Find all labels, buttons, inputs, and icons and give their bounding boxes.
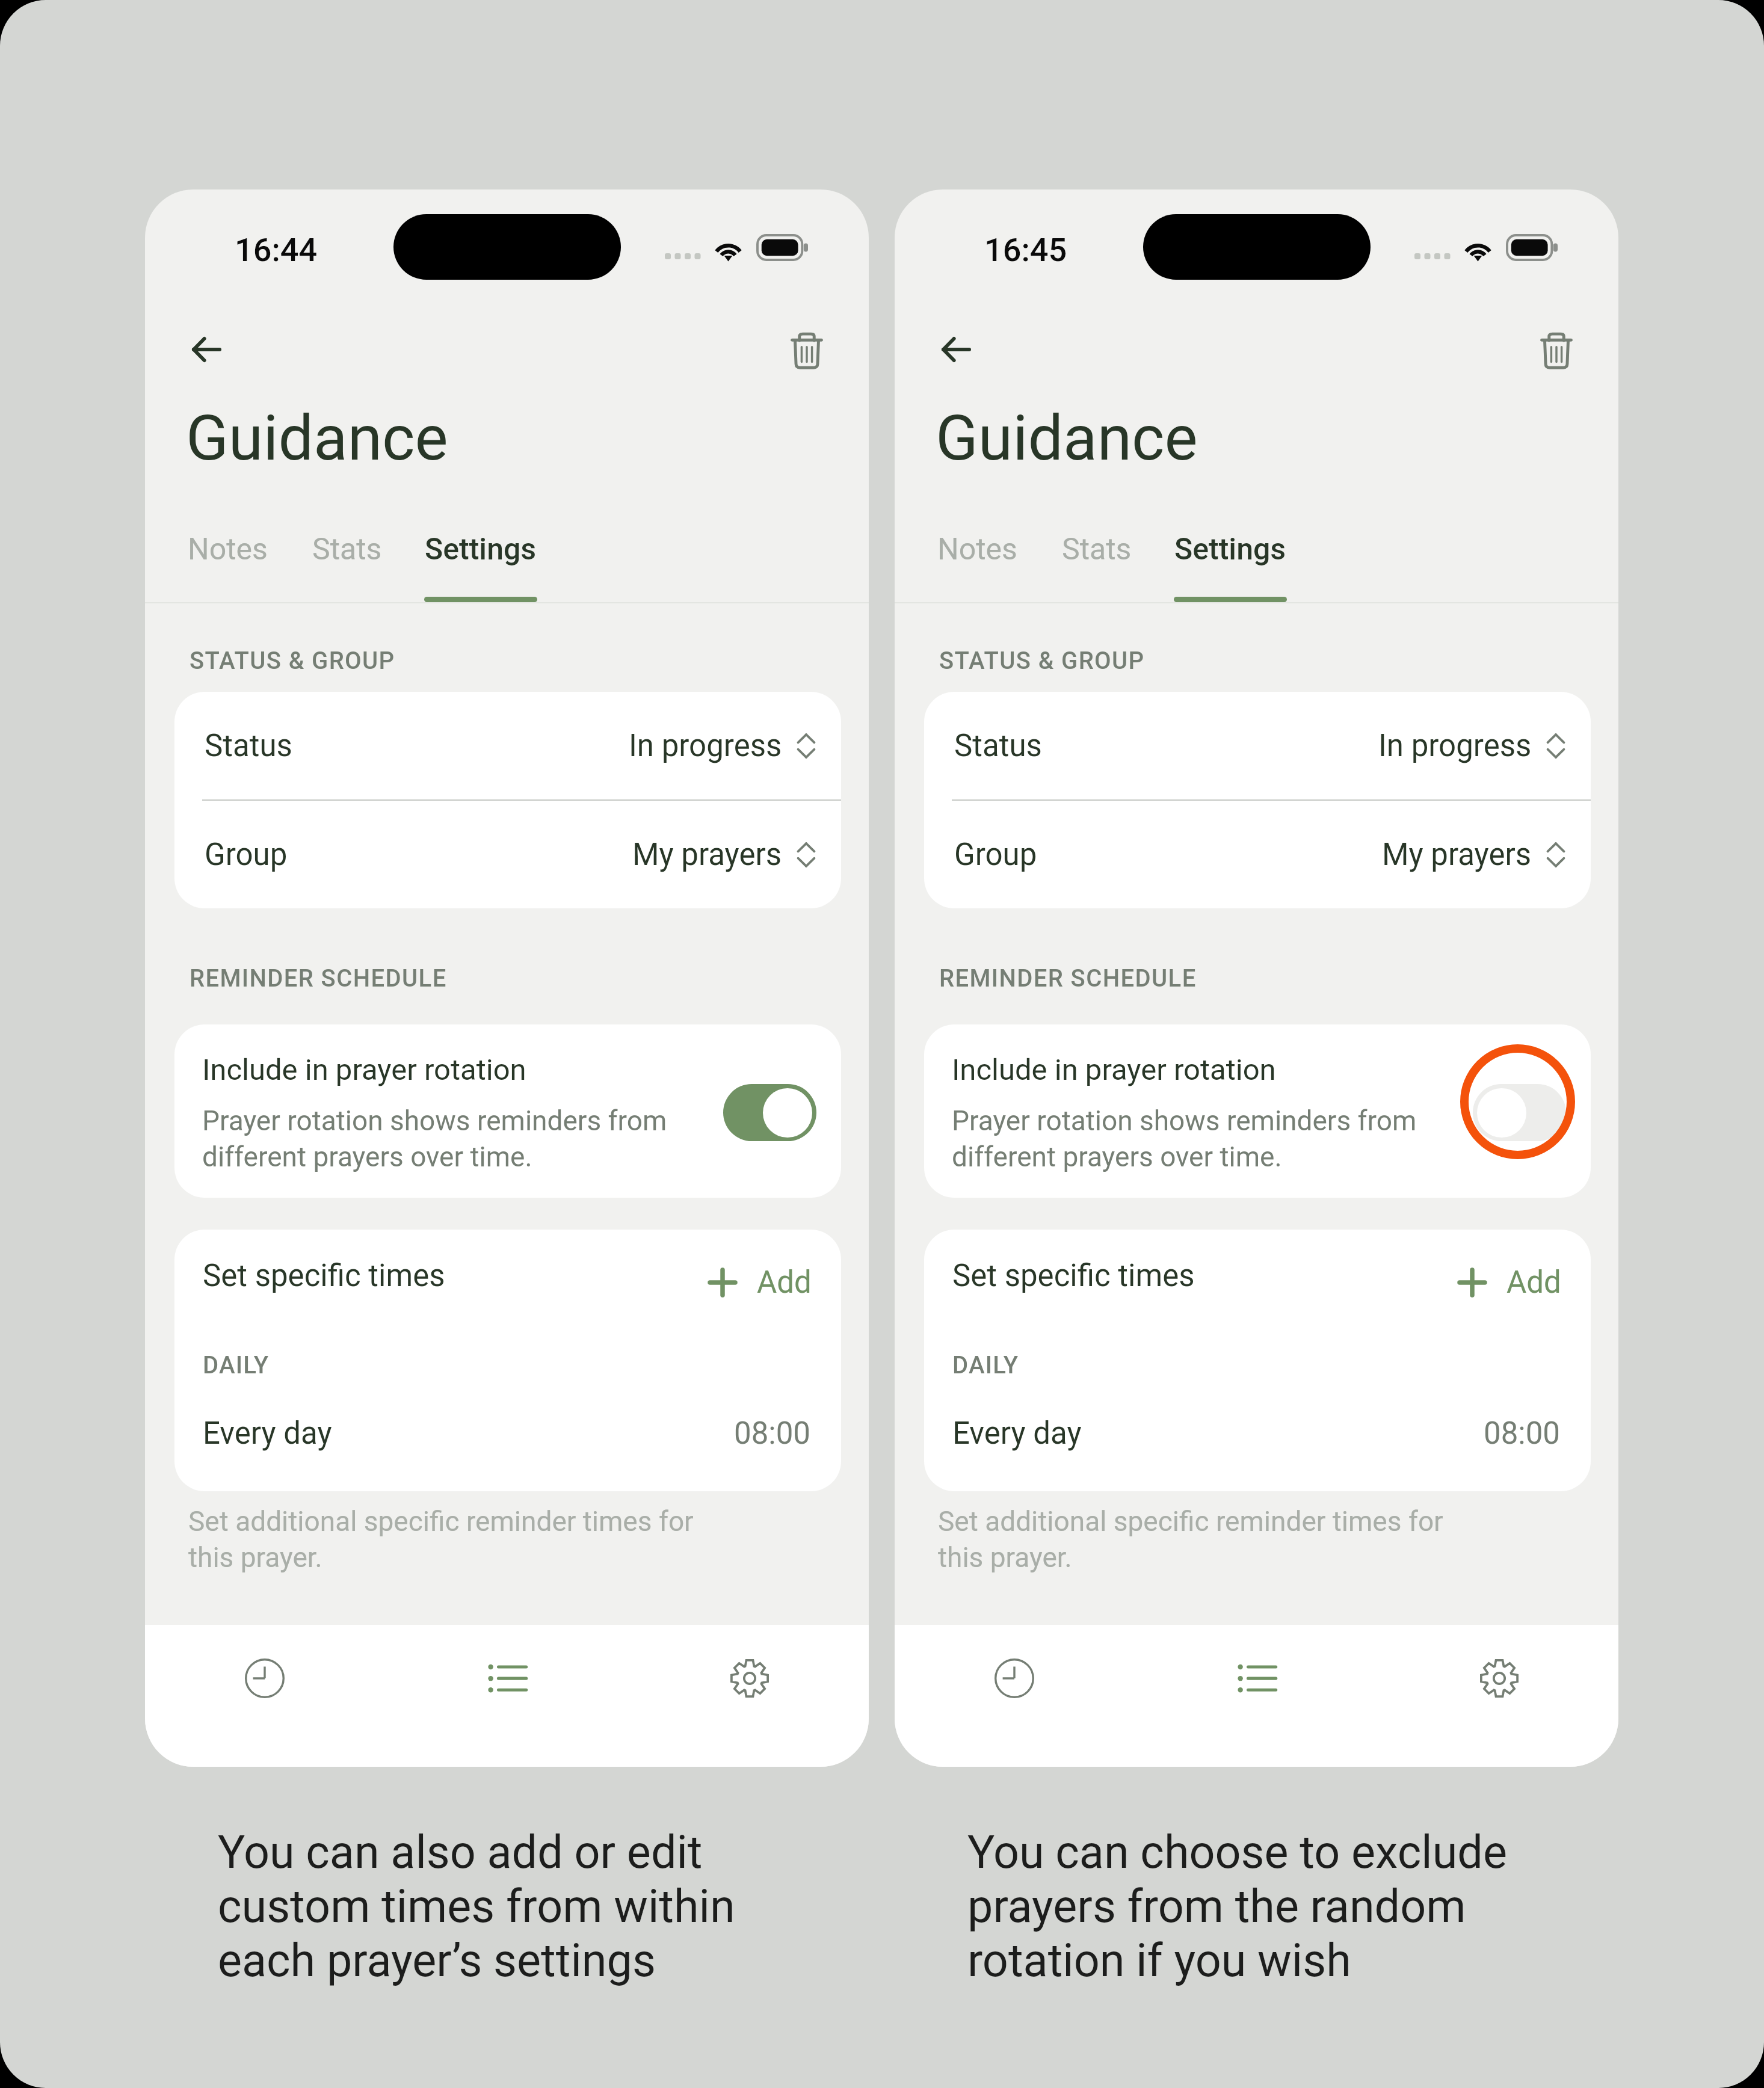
- staticText: Prayer rotation shows reminders from dif…: [202, 1101, 667, 1174]
- staticText: 08:00: [1484, 1415, 1561, 1452]
- button[interactable]: Prayer list: [460, 1630, 556, 1726]
- staticText: You can choose to exclude prayers from t…: [967, 1825, 1507, 1988]
- staticText: Stats: [1062, 532, 1132, 567]
- staticText: Set additional specific reminder times f…: [938, 1502, 1443, 1574]
- staticText: 16:45: [984, 231, 1067, 269]
- button[interactable]: [924, 1024, 1591, 1198]
- staticText: Group: [205, 837, 288, 873]
- staticText: REMINDER SCHEDULE: [190, 964, 447, 993]
- staticText: Include in prayer rotation: [202, 1053, 526, 1087]
- staticText: Notes: [188, 532, 268, 567]
- button[interactable]: History: [217, 1630, 313, 1726]
- staticText: DAILY: [952, 1351, 1019, 1379]
- button[interactable]: Notes: [181, 532, 274, 602]
- staticText: Stats: [312, 532, 382, 567]
- button[interactable]: Status: [174, 692, 841, 799]
- staticText: DAILY: [203, 1351, 270, 1379]
- button[interactable]: Status: [924, 692, 1591, 799]
- button[interactable]: Include in prayer rotation: [723, 1084, 816, 1141]
- staticText: Settings: [1174, 532, 1286, 567]
- staticText: Every day: [203, 1415, 332, 1452]
- staticText: Set specific times: [952, 1258, 1195, 1294]
- button[interactable]: Delete: [771, 315, 843, 387]
- button[interactable]: Back: [920, 313, 992, 386]
- staticText: STATUS & GROUP: [939, 647, 1145, 675]
- staticText: Guidance: [936, 402, 1198, 475]
- staticText: Group: [954, 837, 1037, 873]
- staticText: Notes: [937, 532, 1017, 567]
- button[interactable]: Group: [174, 801, 841, 908]
- staticText: STATUS & GROUP: [190, 647, 395, 675]
- button[interactable]: Group: [924, 801, 1591, 908]
- button[interactable]: Add: [700, 1255, 821, 1310]
- button[interactable]: Settings: [1174, 532, 1287, 602]
- button[interactable]: Settings: [424, 532, 537, 602]
- staticText: Prayer rotation shows reminders from dif…: [952, 1101, 1417, 1174]
- staticText: Settings: [425, 532, 537, 567]
- button[interactable]: Delete: [1520, 315, 1593, 387]
- button[interactable]: Back: [170, 313, 242, 386]
- button[interactable]: Add: [1450, 1255, 1571, 1310]
- button[interactable]: Notes: [931, 532, 1024, 602]
- button[interactable]: Stats: [1056, 532, 1137, 602]
- button[interactable]: Every day: [174, 1403, 841, 1464]
- staticText: Guidance: [186, 402, 448, 475]
- button[interactable]: Prayer list: [1209, 1630, 1306, 1726]
- staticText: 16:44: [235, 231, 318, 269]
- button[interactable]: Stats: [306, 532, 387, 602]
- staticText: Status: [205, 728, 292, 764]
- button[interactable]: Settings: [702, 1630, 798, 1726]
- button[interactable]: Include in prayer rotation: [1473, 1084, 1566, 1141]
- staticText: Add: [757, 1264, 812, 1301]
- staticText: Every day: [952, 1415, 1082, 1452]
- button[interactable]: History: [966, 1630, 1062, 1726]
- staticText: My prayers: [632, 837, 782, 873]
- button[interactable]: Settings: [1451, 1630, 1547, 1726]
- staticText: Status: [954, 728, 1042, 764]
- staticText: Include in prayer rotation: [952, 1053, 1276, 1087]
- button[interactable]: [174, 1024, 841, 1198]
- staticText: Set specific times: [203, 1258, 445, 1294]
- staticText: Add: [1506, 1264, 1561, 1301]
- staticText: 08:00: [734, 1415, 811, 1452]
- staticText: My prayers: [1382, 837, 1532, 873]
- staticText: Set additional specific reminder times f…: [188, 1502, 694, 1574]
- staticText: REMINDER SCHEDULE: [939, 964, 1197, 993]
- staticText: In progress: [629, 728, 782, 764]
- staticText: You can also add or edit custom times fr…: [218, 1825, 735, 1988]
- button[interactable]: Every day: [924, 1403, 1591, 1464]
- staticText: In progress: [1378, 728, 1532, 764]
